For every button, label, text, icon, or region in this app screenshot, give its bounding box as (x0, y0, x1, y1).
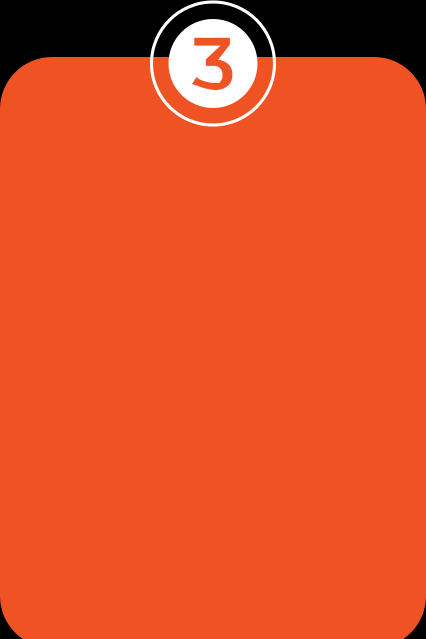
button[interactable]: Step 3 (0, 0, 426, 130)
